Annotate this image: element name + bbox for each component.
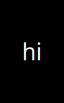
staticText: hi — [22, 36, 42, 66]
